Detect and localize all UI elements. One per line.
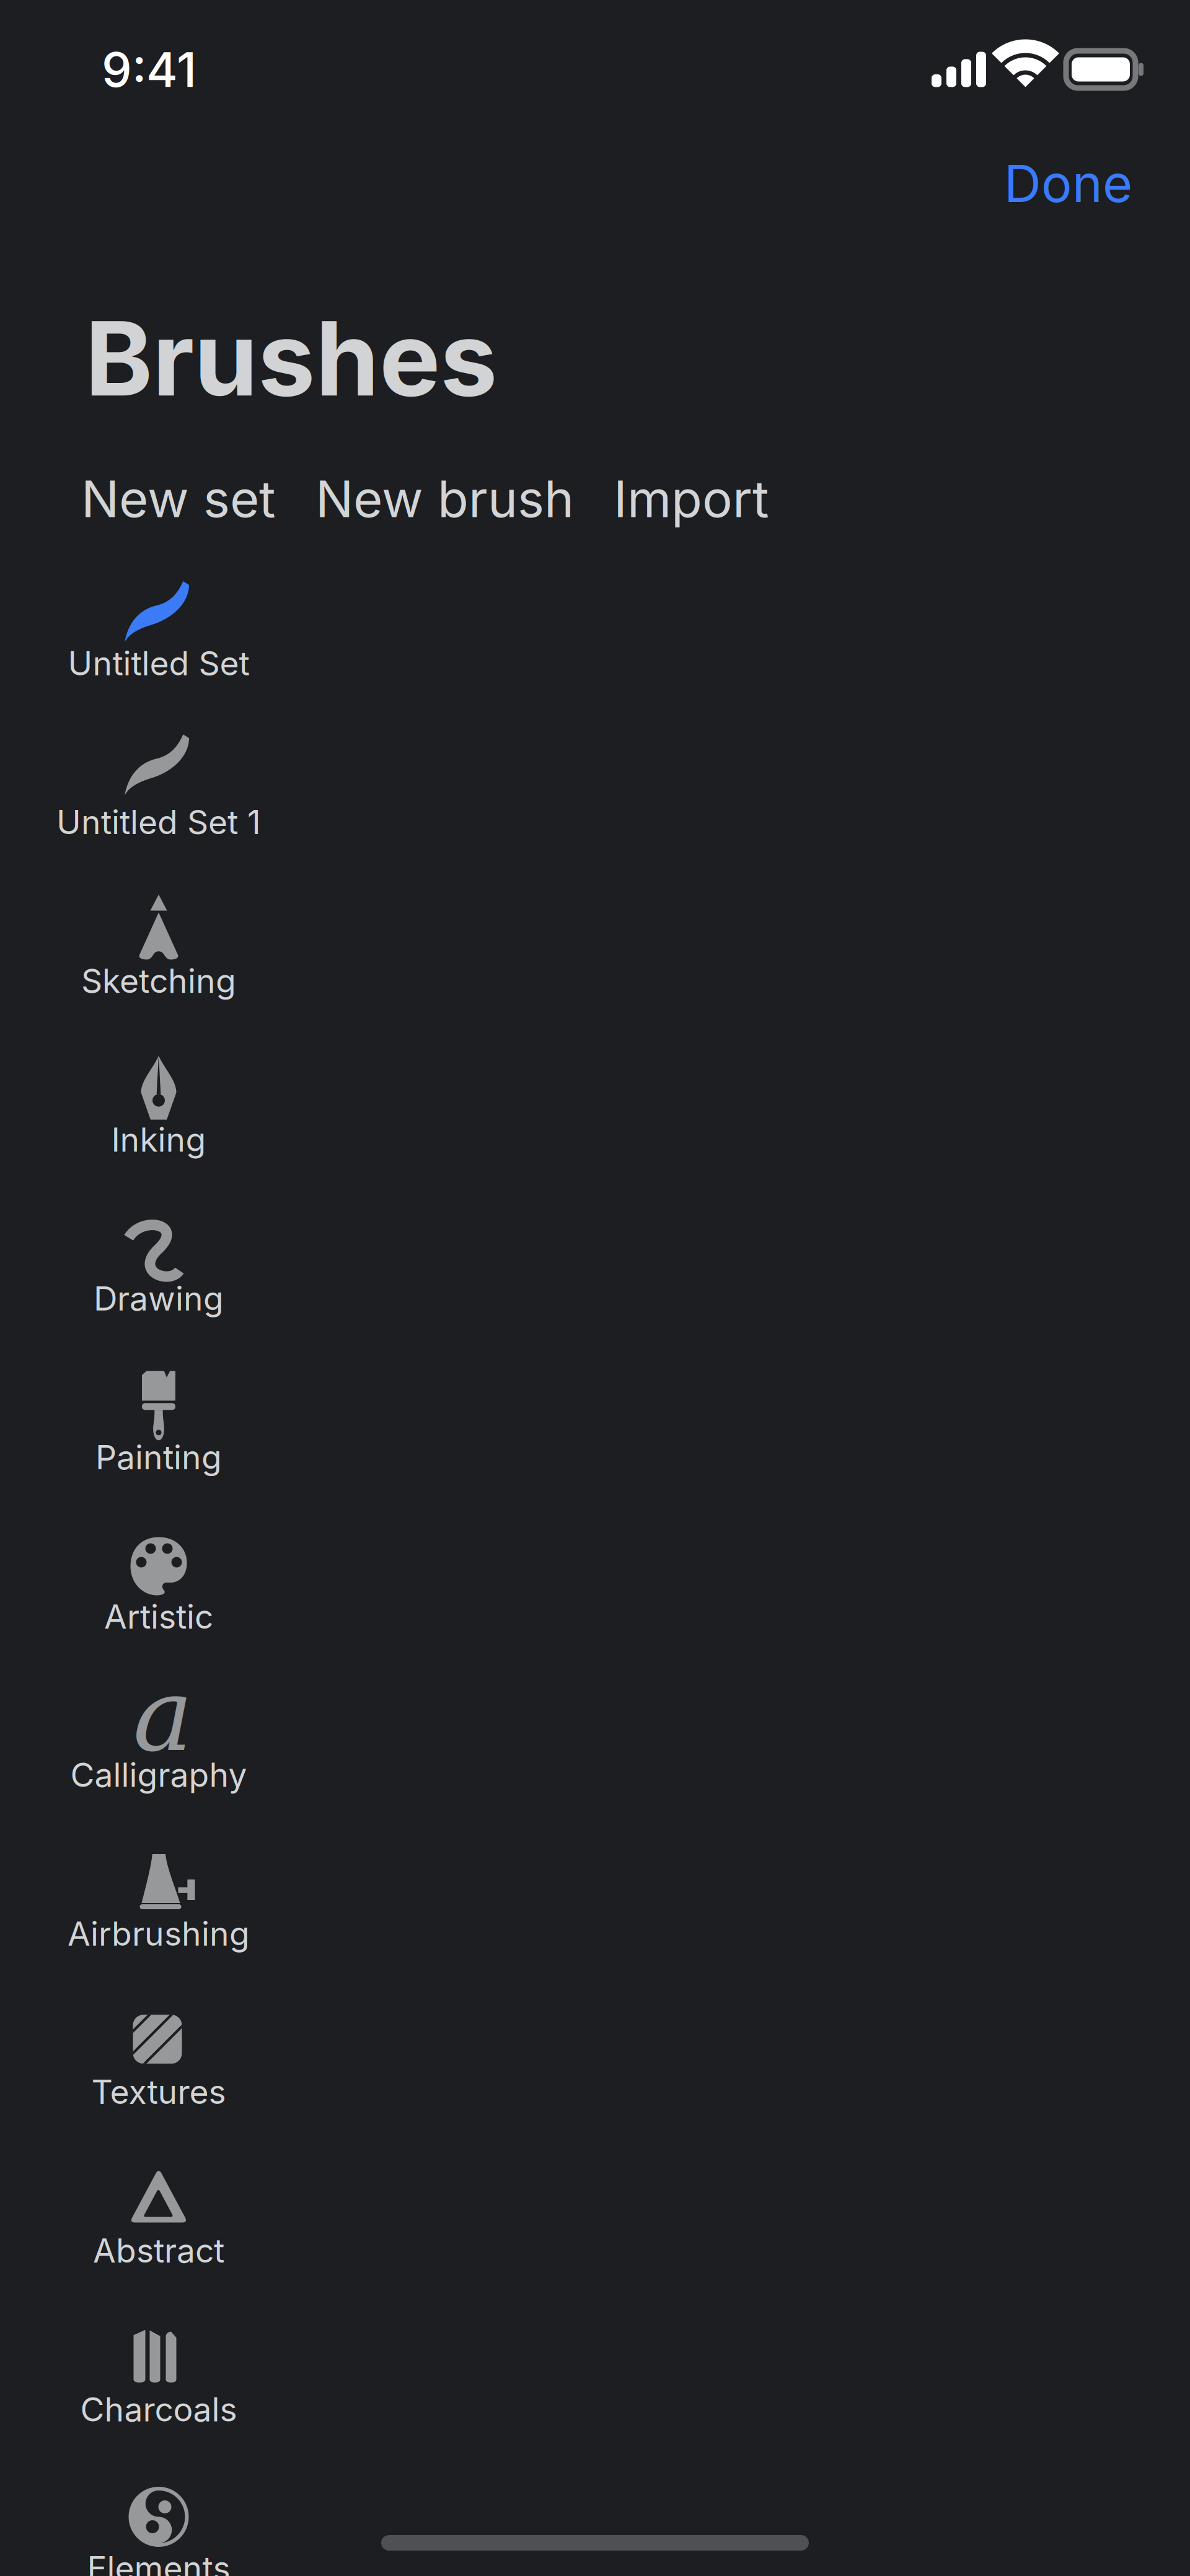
button[interactable]: Drawing: [0, 1210, 1190, 1368]
staticText: Done: [1004, 152, 1132, 214]
staticText: a: [133, 1657, 193, 1774]
button[interactable]: Done: [982, 139, 1155, 228]
staticText: Untitled Set 1: [56, 802, 261, 842]
button[interactable]: New set: [61, 457, 296, 540]
button[interactable]: Import: [594, 457, 789, 540]
button[interactable]: a: [0, 1686, 1190, 1845]
staticText: New set: [81, 468, 276, 529]
button[interactable]: Painting: [0, 1368, 1190, 1527]
button[interactable]: Sketching: [0, 892, 1190, 1051]
staticText: New brush: [315, 468, 574, 529]
staticText: Sketching: [81, 961, 236, 1001]
button[interactable]: Abstract: [0, 2162, 1190, 2321]
staticText: Artistic: [104, 1597, 213, 1637]
staticText: Import: [614, 468, 769, 529]
staticText: Charcoals: [80, 2389, 237, 2429]
staticText: Untitled Set: [68, 643, 249, 683]
button[interactable]: Elements: [0, 2480, 1190, 2576]
button[interactable]: Artistic: [0, 1527, 1190, 1686]
button[interactable]: Textures: [0, 2004, 1190, 2162]
staticText: Airbrushing: [68, 1914, 250, 1954]
button[interactable]: New brush: [296, 457, 594, 540]
staticText: Drawing: [94, 1278, 224, 1318]
button[interactable]: Charcoals: [0, 2321, 1190, 2480]
staticText: Textures: [91, 2072, 226, 2112]
button[interactable]: Untitled Set: [0, 574, 1190, 733]
staticText: Inking: [111, 1120, 206, 1160]
staticText: Abstract: [93, 2231, 224, 2270]
staticText: Calligraphy: [70, 1755, 247, 1795]
staticText: Painting: [95, 1437, 222, 1477]
button[interactable]: Inking: [0, 1051, 1190, 1210]
staticText: Brushes: [85, 296, 498, 420]
staticText: Elements: [87, 2548, 230, 2576]
button[interactable]: Airbrushing: [0, 1845, 1190, 2004]
button[interactable]: Untitled Set 1: [0, 733, 1190, 892]
staticText: 9:41: [102, 40, 196, 98]
